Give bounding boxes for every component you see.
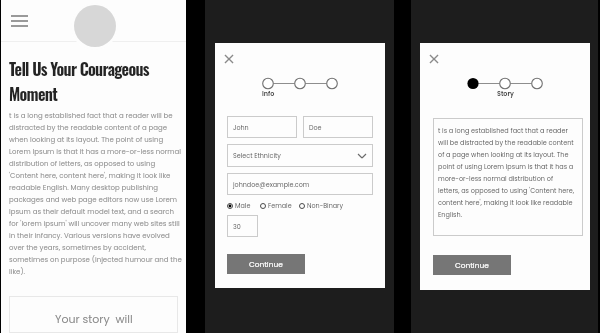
staticText: John xyxy=(233,123,249,132)
button[interactable]: Continue xyxy=(227,254,305,274)
staticText: Female xyxy=(268,201,292,210)
button[interactable]: Close xyxy=(222,52,236,66)
button[interactable]: 30 xyxy=(227,215,258,237)
button[interactable]: Menu xyxy=(11,15,28,27)
staticText: Doe xyxy=(309,123,322,132)
staticText: t is a long established fact that a read… xyxy=(438,124,576,220)
staticText: Male xyxy=(235,201,251,210)
button[interactable]: Female xyxy=(260,201,292,210)
staticText: Non-Binary xyxy=(307,201,344,210)
button[interactable]: Close xyxy=(427,52,441,66)
staticText: Continue xyxy=(249,259,283,269)
button[interactable]: Select Ethnicity xyxy=(227,144,373,167)
button[interactable]: Non-Binary xyxy=(299,201,344,210)
button[interactable]: t is a long established fact that a read… xyxy=(433,118,583,236)
staticText: Select Ethnicity xyxy=(233,151,281,160)
button[interactable]: John xyxy=(227,116,297,138)
staticText: Tell Us Your Courageous Moment xyxy=(9,56,181,106)
staticText: Info xyxy=(262,89,275,98)
button[interactable]: Doe xyxy=(303,116,373,138)
staticText: johndoe@example.com xyxy=(233,180,310,189)
button[interactable]: johndoe@example.com xyxy=(227,173,373,195)
staticText: Your story will xyxy=(55,311,133,326)
button[interactable]: Your story will xyxy=(9,296,178,333)
staticText: t is a long established fact that a read… xyxy=(9,109,183,277)
button[interactable]: Profile picture xyxy=(74,5,116,47)
staticText: 30 xyxy=(233,222,241,231)
staticText: Continue xyxy=(455,260,489,270)
button[interactable]: Continue xyxy=(433,255,511,275)
staticText: Story xyxy=(497,89,514,98)
button[interactable]: Male xyxy=(227,201,251,210)
